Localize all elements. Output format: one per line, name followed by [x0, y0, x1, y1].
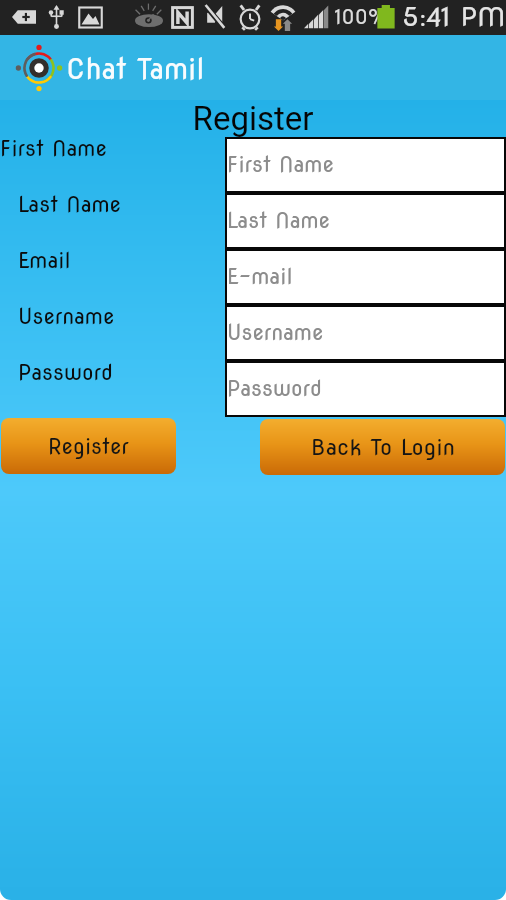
- staticText: E-mail: [227, 264, 293, 289]
- button[interactable]: Last Name: [225, 193, 506, 249]
- staticText: 100%: [335, 6, 388, 29]
- button[interactable]: Back To Login: [260, 419, 505, 475]
- staticText: Email: [18, 248, 71, 273]
- staticText: Chat Tamil: [66, 52, 205, 86]
- staticText: Register: [48, 434, 129, 459]
- staticText: Last Name: [227, 208, 331, 233]
- staticText: Password: [18, 360, 114, 385]
- other: Chat Tamil logo: [17, 46, 61, 90]
- staticText: Register: [0, 99, 506, 138]
- staticText: Last Name: [18, 192, 122, 217]
- button[interactable]: Username: [225, 305, 506, 361]
- button[interactable]: First Name: [225, 137, 506, 193]
- staticText: First Name: [0, 136, 107, 161]
- button[interactable]: Password: [225, 361, 506, 417]
- staticText: Username: [18, 304, 115, 329]
- staticText: Username: [227, 320, 324, 345]
- staticText: First Name: [227, 152, 334, 177]
- staticText: 5:41 PM: [402, 1, 506, 32]
- staticText: Back To Login: [311, 434, 455, 461]
- staticText: Password: [227, 376, 323, 401]
- button[interactable]: Register: [1, 418, 176, 474]
- button[interactable]: E-mail: [225, 249, 506, 305]
